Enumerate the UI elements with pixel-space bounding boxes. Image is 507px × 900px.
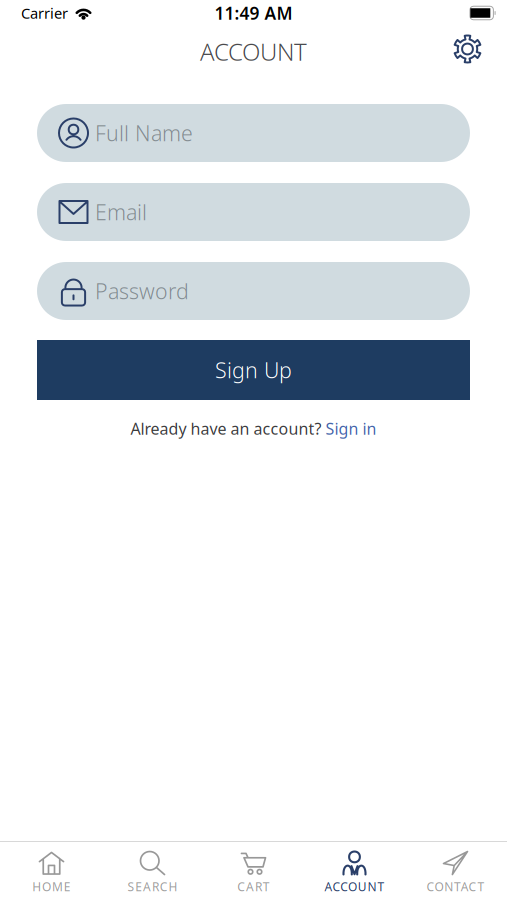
button[interactable]: CONTACT: [405, 843, 506, 899]
button[interactable]: HOME: [1, 843, 102, 899]
staticText: SEARCH: [127, 878, 177, 894]
button[interactable]: Email: [37, 183, 470, 241]
staticText: Sign Up: [215, 356, 292, 384]
staticText: Password: [95, 277, 189, 305]
button[interactable]: Full Name: [37, 104, 470, 162]
button[interactable]: SEARCH: [102, 843, 203, 899]
staticText: ACCOUNT: [200, 36, 307, 67]
button[interactable]: [453, 35, 482, 64]
button[interactable]: Sign Up: [37, 340, 470, 400]
staticText: CART: [237, 878, 270, 894]
staticText: 11:49 AM: [214, 1, 292, 24]
button[interactable]: ACCOUNT: [304, 843, 405, 899]
staticText: Already have an account?: [130, 418, 321, 439]
staticText: CONTACT: [427, 878, 484, 894]
button[interactable]: CART: [203, 843, 304, 899]
staticText: HOME: [32, 878, 71, 894]
button[interactable]: Sign in: [325, 418, 376, 439]
button[interactable]: Password: [37, 262, 470, 320]
staticText: Carrier: [21, 3, 68, 23]
staticText: ACCOUNT: [325, 878, 384, 894]
staticText: Full Name: [95, 119, 193, 147]
staticText: Email: [95, 198, 147, 226]
staticText: Sign in: [325, 418, 376, 439]
